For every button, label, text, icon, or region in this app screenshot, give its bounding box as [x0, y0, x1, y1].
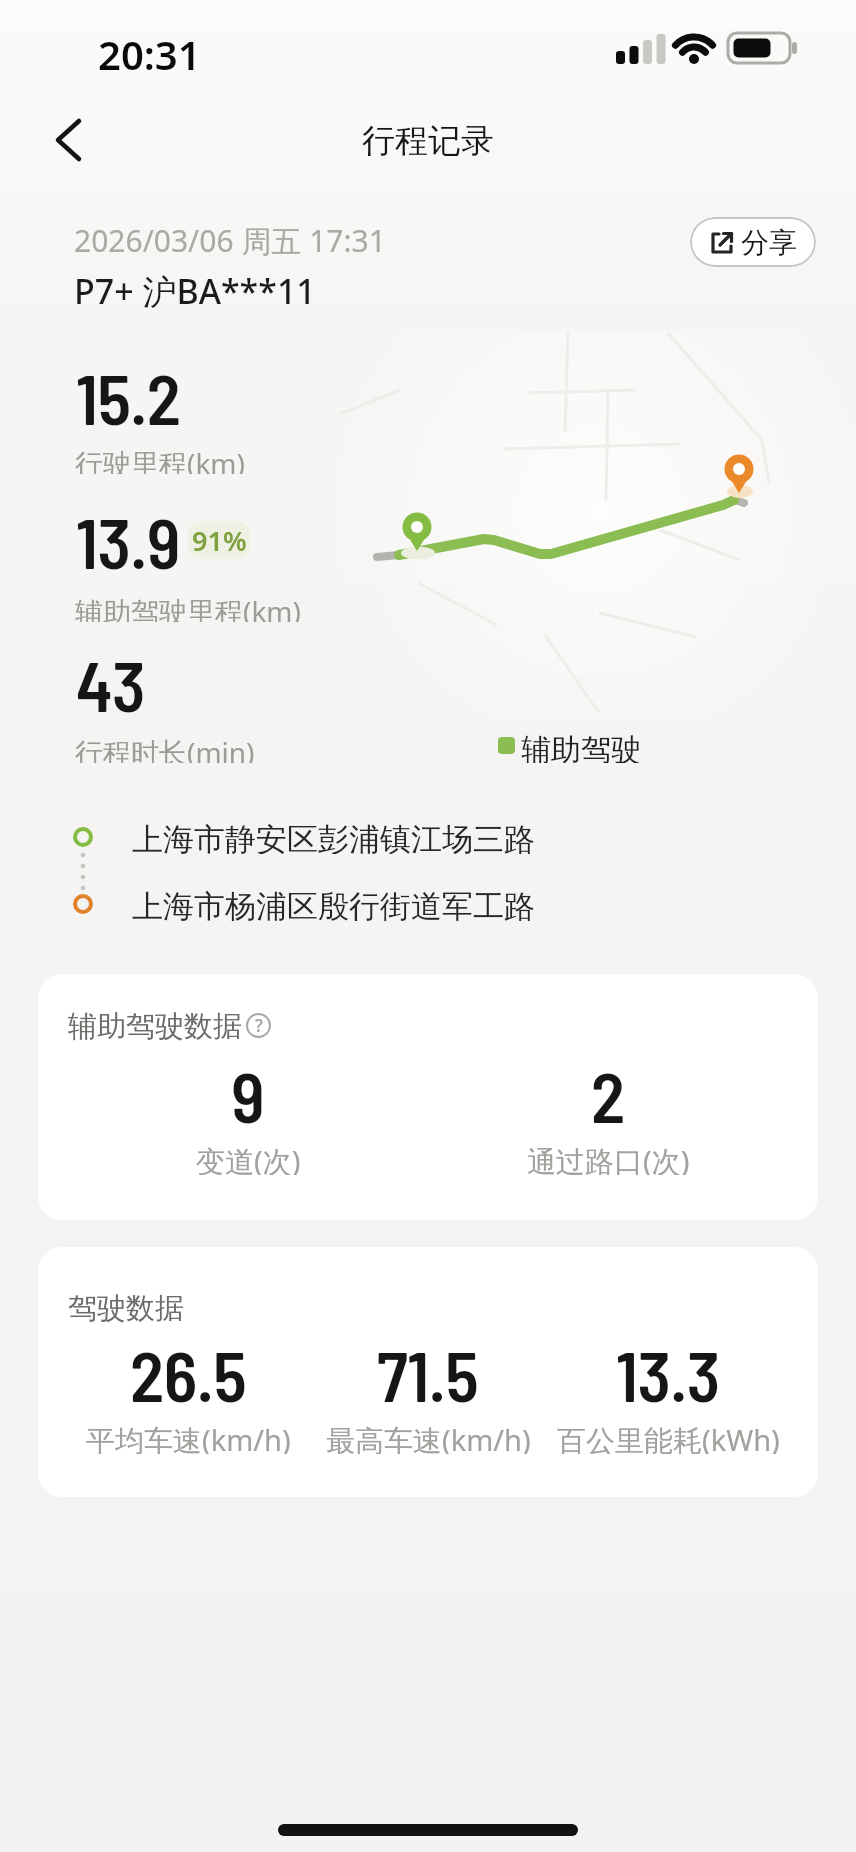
staticText: 71.5 — [377, 1332, 479, 1404]
button[interactable]: 分享 — [690, 217, 816, 267]
staticText: 13.3 — [616, 1332, 720, 1404]
staticText: 平均车速(km/h) — [86, 1420, 291, 1454]
staticText: 辅助驾驶里程(km) — [75, 592, 301, 622]
staticText: ? — [255, 1014, 263, 1037]
staticText: 行程记录 — [362, 120, 494, 162]
staticText: 2026/03/06 周五 17:31 — [74, 220, 386, 256]
staticText: 辅助驾驶 — [521, 731, 641, 763]
staticText: 最高车速(km/h) — [326, 1420, 531, 1454]
staticText: P7+ 沪BA***11 — [74, 268, 316, 308]
staticText: 26.5 — [130, 1332, 247, 1404]
staticText: 9 — [231, 1053, 265, 1125]
staticText: 上海市杨浦区殷行街道军工路 — [132, 887, 535, 921]
staticText: 分享 — [741, 225, 797, 260]
staticText: 变道(次) — [196, 1141, 301, 1175]
staticText: 20:31 — [98, 27, 201, 71]
button[interactable] — [38, 108, 102, 172]
staticText: 行驶里程(km) — [75, 444, 245, 474]
staticText: 通过路口(次) — [527, 1141, 690, 1175]
staticText: 驾驶数据 — [68, 1290, 184, 1326]
staticText: 2 — [591, 1053, 625, 1125]
button[interactable]: ? — [246, 1013, 271, 1038]
staticText: 13.9 — [76, 499, 180, 579]
staticText: 91% — [192, 522, 247, 559]
staticText: 辅助驾驶数据 — [68, 1008, 242, 1044]
staticText: 15.2 — [76, 355, 181, 435]
staticText: 43 — [76, 642, 145, 722]
staticText: 行程时长(min) — [75, 733, 255, 763]
staticText: 百公里能耗(kWh) — [557, 1420, 780, 1454]
staticText: 上海市静安区彭浦镇江场三路 — [132, 820, 535, 854]
